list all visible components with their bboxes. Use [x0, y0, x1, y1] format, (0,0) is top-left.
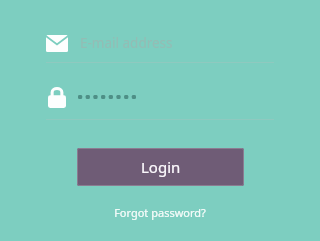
button[interactable]: E-mail [40, 28, 280, 58]
button[interactable]: Forgot password? [0, 202, 320, 222]
staticText: E-mail address [80, 34, 173, 52]
button[interactable]: Login [77, 148, 244, 186]
button[interactable]: Password [40, 82, 280, 112]
other: Password [48, 86, 66, 108]
staticText: Forgot password? [114, 205, 206, 220]
other: E-mail [46, 35, 68, 52]
staticText: Login [141, 157, 181, 177]
